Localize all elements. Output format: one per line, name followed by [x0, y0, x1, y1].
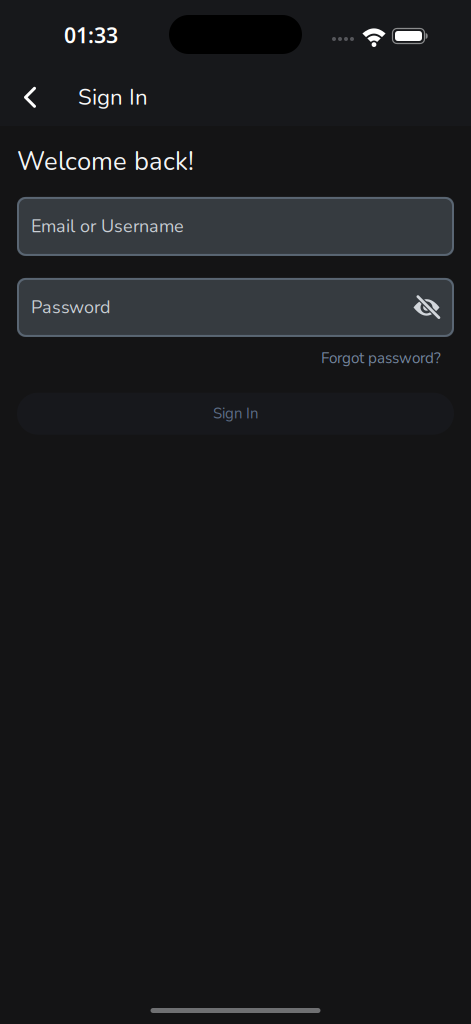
- staticText: Sign In: [213, 403, 258, 424]
- button[interactable]: Forgot password?: [321, 348, 454, 369]
- button[interactable]: Email or Username: [17, 197, 454, 256]
- staticText: Password: [31, 295, 110, 320]
- button[interactable]: Show password: [403, 282, 454, 333]
- button[interactable]: Sign In: [17, 393, 454, 435]
- staticText: Welcome back!: [17, 144, 194, 179]
- button[interactable]: Back: [0, 66, 52, 129]
- staticText: Email or Username: [31, 214, 184, 239]
- staticText: Forgot password?: [321, 348, 441, 369]
- staticText: Sign In: [78, 82, 148, 112]
- button[interactable]: Password: [17, 278, 454, 337]
- staticText: 01:33: [64, 21, 118, 49]
